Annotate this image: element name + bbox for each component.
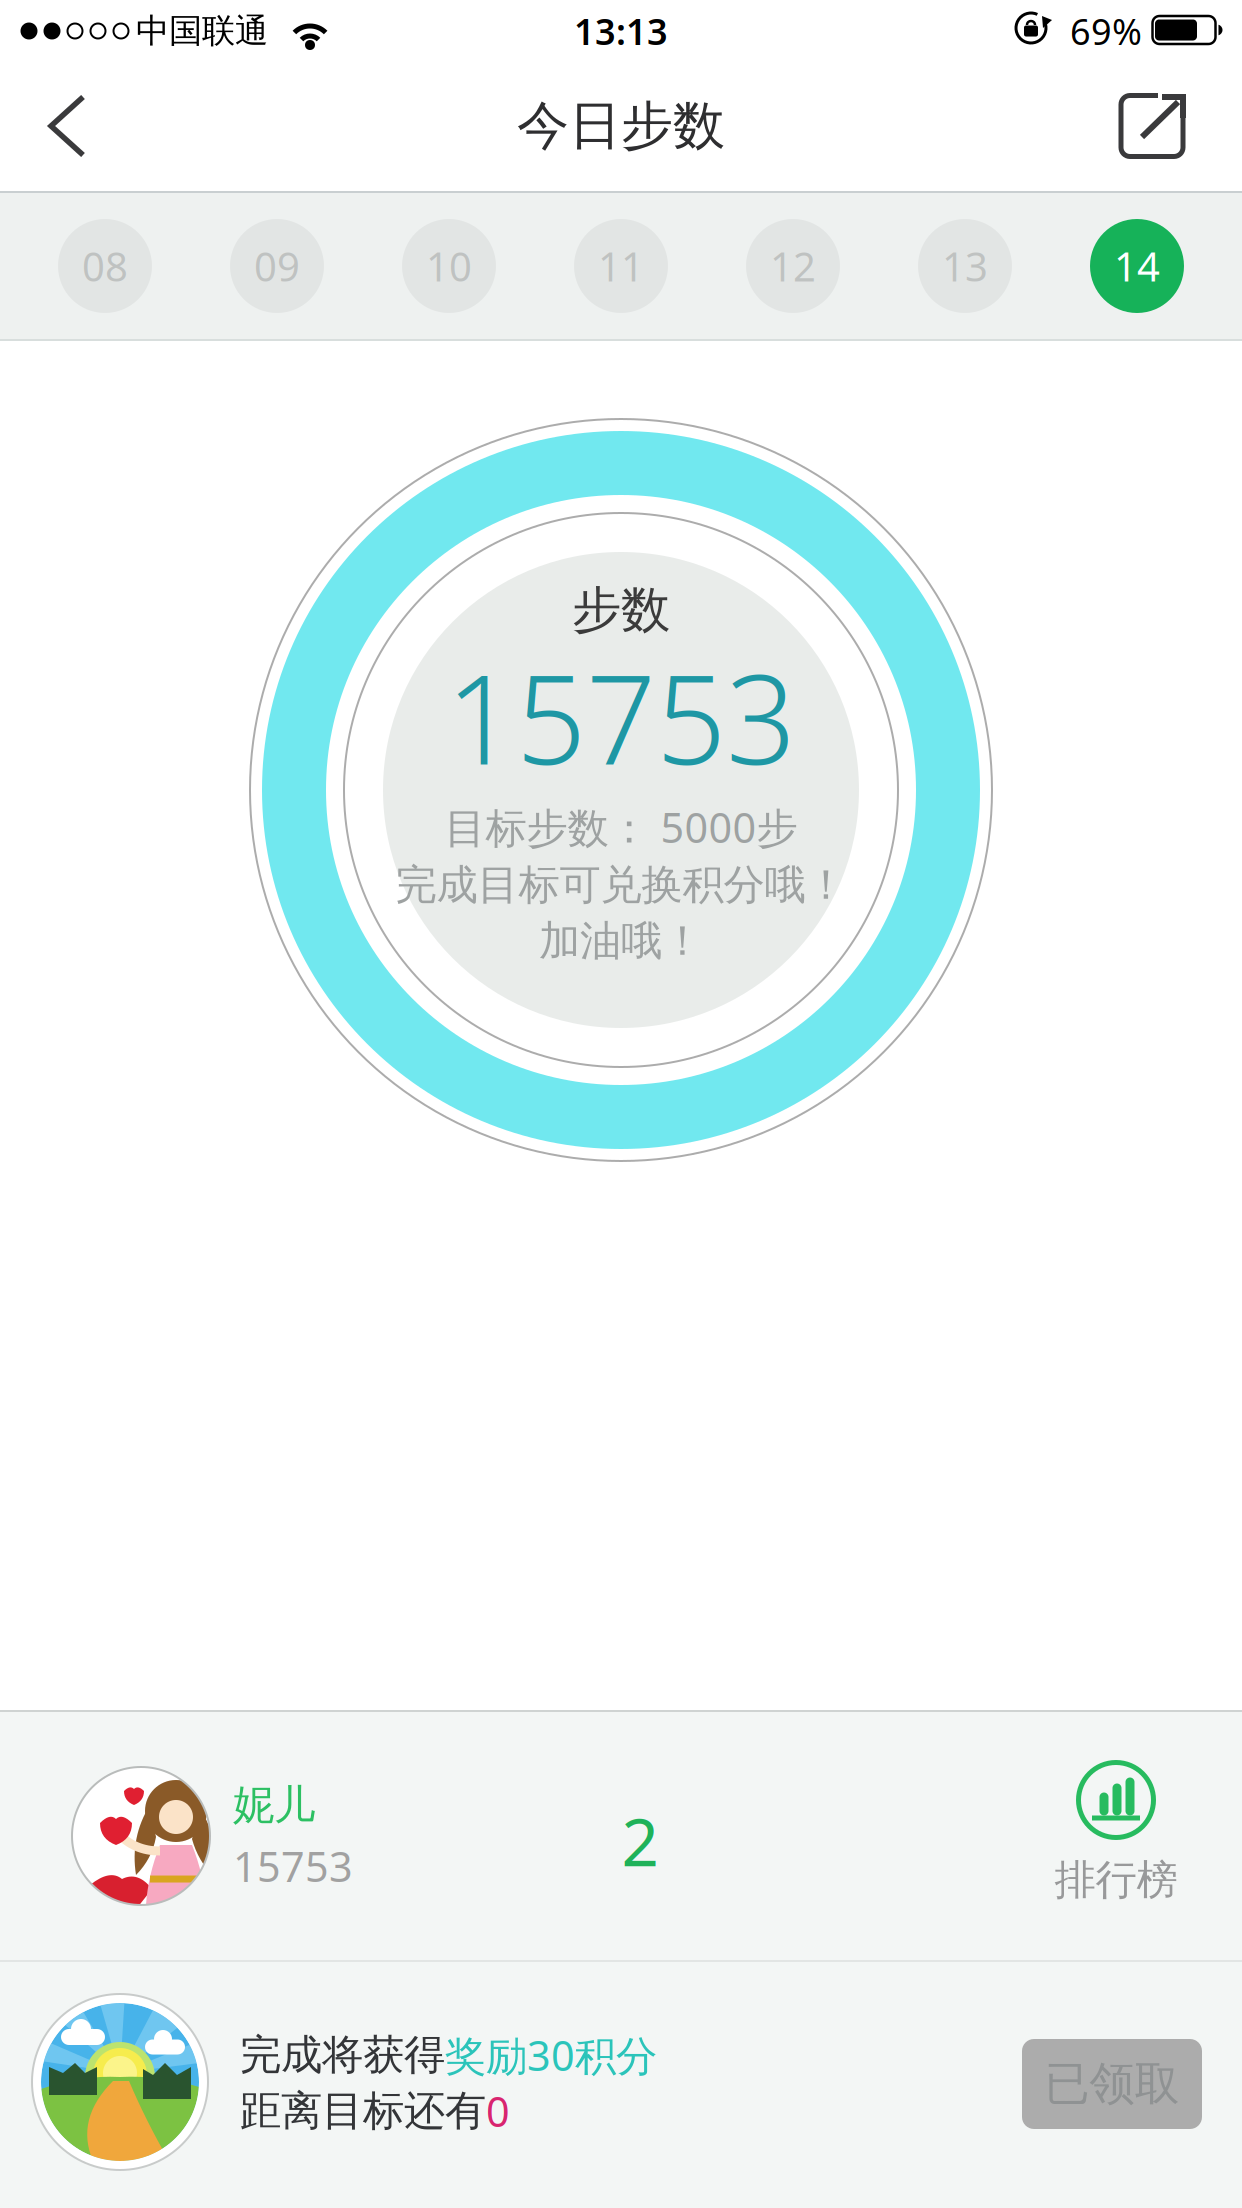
button[interactable]: 13 [918,219,1012,313]
staticText: 15753 [233,1839,353,1893]
staticText: 步数 [572,580,670,640]
button[interactable]: 14 [1090,219,1184,313]
staticText: 距离目标还有 [240,2086,486,2136]
staticText: 13 [942,239,988,292]
button[interactable]: 10 [402,219,496,313]
staticText: 完成将获得 [240,2030,445,2080]
button[interactable]: 11 [574,219,668,313]
button[interactable]: Share [1102,71,1202,181]
staticText: 完成目标可兑换积分哦！ [395,860,846,910]
staticText: 妮儿 [233,1780,315,1830]
staticText: 今日步数 [517,94,725,158]
staticText: 奖励30积分 [445,2028,657,2082]
button[interactable]: 排行榜 [1036,1753,1196,1923]
staticText: 中国联通 [136,10,268,51]
button[interactable]: 08 [58,219,152,313]
button[interactable]: 已领取 [1022,2039,1202,2129]
staticText: 13:13 [574,7,668,55]
staticText: 69% [1070,7,1142,55]
staticText: 09 [254,239,300,292]
staticText: 15753 [446,636,796,798]
staticText: 12 [770,239,816,292]
staticText: 10 [426,239,472,292]
staticText: 排行榜 [1054,1855,1177,1905]
staticText: 已领取 [1044,2056,1179,2112]
button[interactable]: 09 [230,219,324,313]
button[interactable]: Back [47,94,87,158]
staticText: 14 [1114,239,1160,292]
staticText: 0 [486,2084,510,2138]
staticText: 目标步数： 5000步 [444,800,797,854]
staticText: 加油哦！ [539,916,703,966]
staticText: 11 [598,239,644,292]
staticText: 08 [82,239,128,292]
button[interactable]: 12 [746,219,840,313]
staticText: 2 [621,1798,658,1884]
